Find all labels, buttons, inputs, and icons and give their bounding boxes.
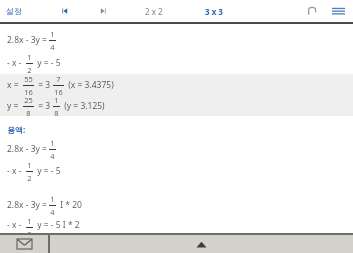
button[interactable]: Expand [50, 235, 353, 253]
staticText: - x - [7, 57, 24, 69]
staticText: 16 [54, 87, 63, 95]
staticText: 55 [24, 74, 33, 84]
staticText: 3 x 3 [205, 6, 223, 17]
staticText: 2.8x - 3y = [7, 34, 47, 46]
staticText: 1 [27, 160, 32, 170]
button[interactable]: 3 x 3 [205, 6, 223, 17]
staticText: 8 [26, 108, 31, 116]
staticText: y = - 5 [35, 57, 61, 69]
staticText: 4 [50, 151, 55, 160]
staticText: (y = 3.125) [62, 100, 105, 112]
staticText: y = [7, 100, 21, 112]
button[interactable]: Next [95, 3, 111, 19]
staticText: y = - 5 [35, 165, 61, 177]
button[interactable]: 설정 [6, 6, 22, 16]
staticText: (x = 3.4375) [66, 79, 114, 91]
staticText: 16 [24, 87, 33, 95]
staticText: - x - [7, 219, 24, 231]
staticText: I * 20 [58, 199, 82, 211]
staticText: = 3 [36, 100, 51, 112]
staticText: 1 [50, 29, 55, 39]
staticText: = 3 [36, 79, 51, 91]
staticText: 설정 [6, 6, 22, 16]
staticText: 7 [56, 74, 61, 84]
button[interactable]: Menu [329, 2, 347, 20]
staticText: y = - 5 I * 2 [35, 219, 80, 231]
staticText: x = [7, 79, 21, 91]
staticText: 2 [27, 173, 32, 182]
staticText: 2 x 2 [145, 6, 163, 17]
staticText: 2 [27, 229, 32, 233]
staticText: 25 [24, 95, 33, 105]
staticText: 1 [27, 216, 32, 226]
staticText: 1 [27, 52, 32, 62]
button[interactable]: Previous [57, 3, 73, 19]
staticText: 1 [54, 95, 59, 105]
staticText: 4 [50, 42, 55, 52]
staticText: - x - [7, 165, 24, 177]
staticText: 4 [50, 207, 55, 216]
button[interactable]: 2 x 2 [145, 6, 163, 17]
staticText: 1 [50, 194, 55, 204]
button[interactable]: Mail [0, 235, 48, 253]
staticText: 1 [50, 138, 55, 148]
staticText: 2.8x - 3y = [7, 199, 47, 211]
staticText: 8 [54, 108, 59, 116]
staticText: 2 [27, 65, 32, 74]
staticText: 용액: [7, 124, 26, 135]
staticText: 2.8x - 3y = [7, 143, 47, 155]
button[interactable]: Undo [303, 2, 321, 20]
